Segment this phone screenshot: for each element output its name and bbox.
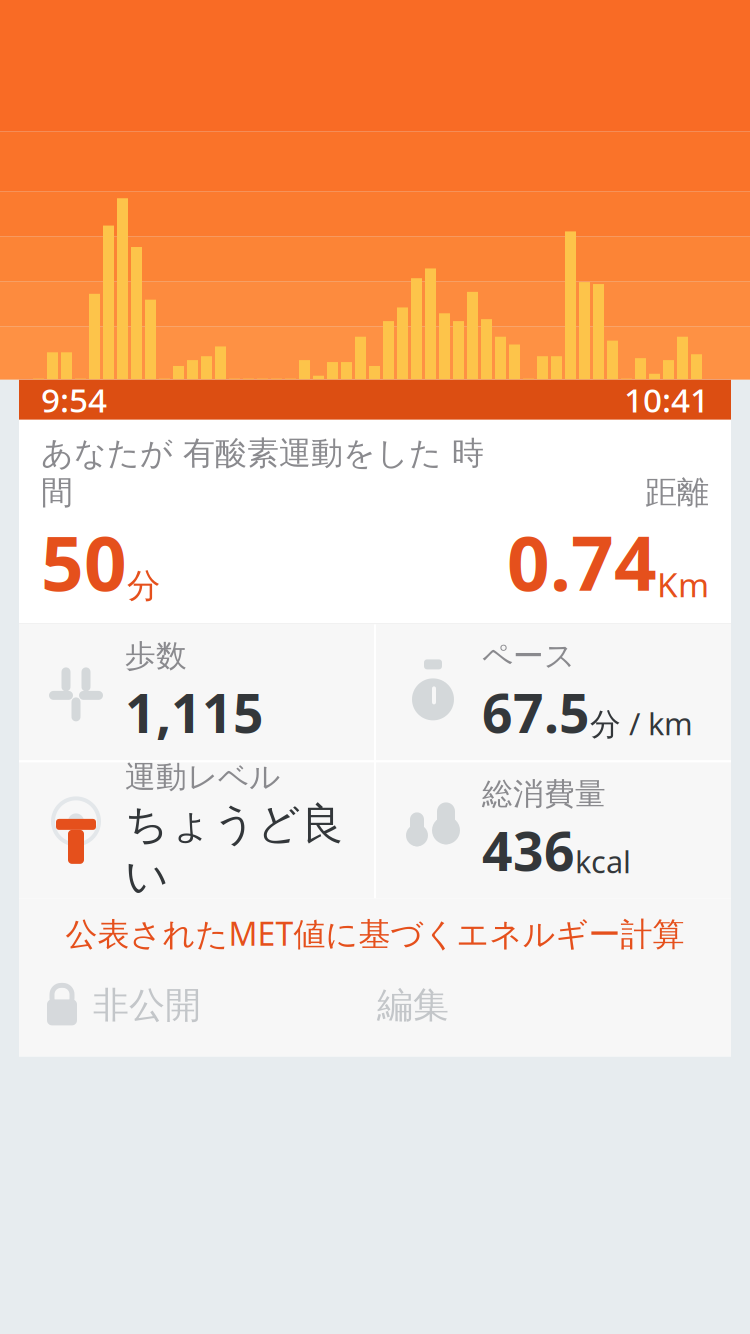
button[interactable]: 編集: [377, 968, 449, 1042]
staticText: kcal: [575, 841, 631, 882]
staticText: 67.5: [482, 677, 590, 748]
staticText: 編集: [377, 983, 449, 1027]
staticText: 総消費量: [482, 775, 606, 813]
staticText: 10:41: [624, 377, 709, 422]
button[interactable]: 非公開: [19, 968, 227, 1042]
staticText: 非公開: [93, 983, 201, 1027]
staticText: 分 / km: [590, 703, 693, 744]
staticText: 運動レベル: [125, 758, 280, 796]
button[interactable]: 総消費量: [376, 762, 731, 898]
staticText: 1,115: [125, 677, 264, 748]
button[interactable]: ペース: [376, 624, 731, 760]
staticText: あなたが 有酸素運動をした 時間: [41, 434, 484, 512]
button[interactable]: 公表されたMET値に基づくエネルギー計算: [65, 898, 684, 968]
staticText: 分: [127, 565, 160, 606]
staticText: ちょうど良い: [125, 798, 344, 903]
staticText: ペース: [482, 637, 575, 675]
staticText: 50: [41, 512, 127, 611]
staticText: 0.74: [507, 512, 657, 611]
button[interactable]: 運動レベル: [19, 762, 374, 898]
staticText: 歩数: [125, 637, 187, 675]
staticText: 距離: [645, 473, 709, 512]
button[interactable]: 歩数: [19, 624, 374, 760]
staticText: 436: [482, 815, 575, 886]
staticText: 9:54: [41, 377, 107, 422]
staticText: Km: [657, 562, 709, 606]
staticText: 公表されたMET値に基づくエネルギー計算: [65, 912, 684, 955]
